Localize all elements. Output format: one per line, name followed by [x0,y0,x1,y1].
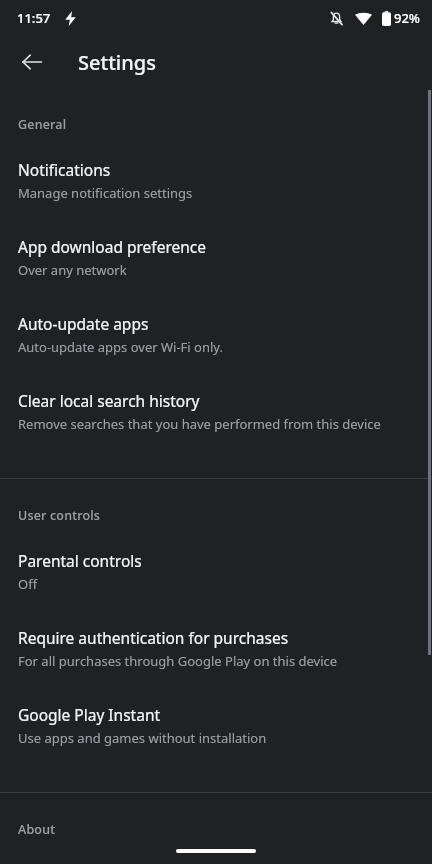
staticText: App download preference [18,236,207,257]
staticText: Parental controls [18,550,142,571]
staticText: 11:57 [17,9,51,27]
staticText: Auto-update apps over Wi-Fi only. [18,338,223,356]
button[interactable]: Google Play Instant [0,687,432,764]
staticText: Over any network [18,261,127,279]
staticText: About [18,821,56,838]
staticText: Auto-update apps [18,313,149,334]
button[interactable]: Auto-update apps [0,296,432,373]
staticText: Remove searches that you have performed … [18,415,381,433]
button[interactable]: App download preference [0,219,432,296]
button[interactable]: Parental controls [0,533,432,610]
button[interactable]: Require authentication for purchases [0,610,432,687]
staticText: Use apps and games without installation [18,729,267,747]
staticText: Off [18,575,38,593]
staticText: For all purchases through Google Play on… [18,652,338,670]
staticText: Manage notification settings [18,184,193,202]
staticText: User controls [18,507,101,524]
staticText: Clear local search history [18,390,200,411]
staticText: General [18,116,67,133]
button[interactable]: Notifications [0,142,432,219]
staticText: Require authentication for purchases [18,627,289,648]
staticText: Google Play Instant [18,704,161,725]
staticText: 92% [394,9,420,27]
staticText: Notifications [18,159,111,180]
staticText: Settings [78,49,156,76]
button[interactable]: Clear local search history [0,373,432,450]
button[interactable]: Back [10,40,54,84]
